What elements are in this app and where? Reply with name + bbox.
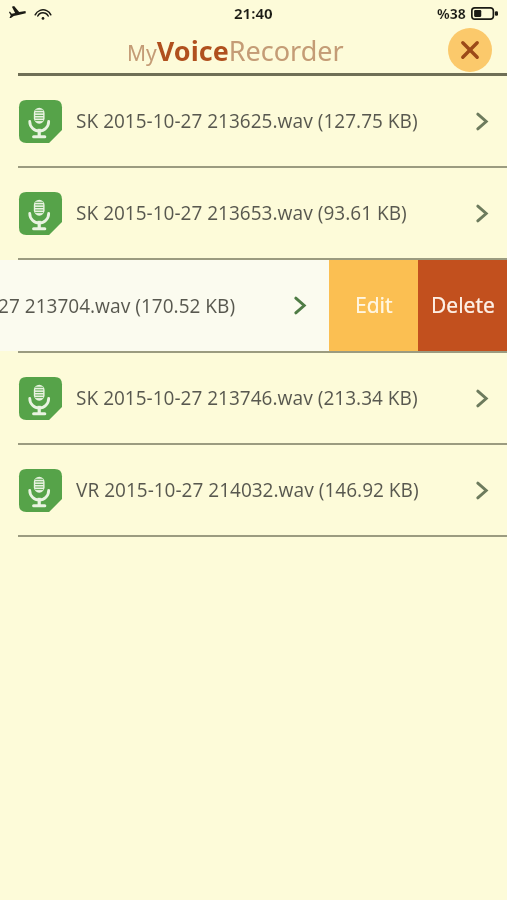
- staticText: Delete: [431, 291, 495, 320]
- button[interactable]: VR 2015-10-27 214032.wav (146.92 KB): [0, 445, 507, 535]
- staticText: -27 213704.wav (170.52 KB): [0, 293, 285, 319]
- staticText: SK 2015-10-27 213653.wav (93.61 KB): [76, 200, 475, 226]
- button[interactable]: SK 2015-10-27 213625.wav (127.75 KB): [0, 76, 507, 166]
- staticText: %38: [437, 4, 466, 23]
- button[interactable]: SK 2015-10-27 213746.wav (213.34 KB): [0, 353, 507, 443]
- staticText: Edit: [355, 291, 393, 320]
- button[interactable]: SK 2015-10-27 213653.wav (93.61 KB): [0, 168, 507, 258]
- staticText: SK 2015-10-27 213746.wav (213.34 KB): [76, 385, 475, 411]
- button[interactable]: Close: [448, 28, 492, 72]
- button[interactable]: Delete: [418, 260, 507, 351]
- staticText: SK 2015-10-27 213625.wav (127.75 KB): [76, 108, 475, 134]
- button[interactable]: Edit: [329, 260, 418, 351]
- staticText: MyVoiceRecorder: [127, 32, 344, 69]
- staticText: VR 2015-10-27 214032.wav (146.92 KB): [76, 477, 475, 503]
- button[interactable]: -27 213704.wav (170.52 KB): [0, 260, 329, 351]
- staticText: 21:40: [234, 3, 273, 23]
